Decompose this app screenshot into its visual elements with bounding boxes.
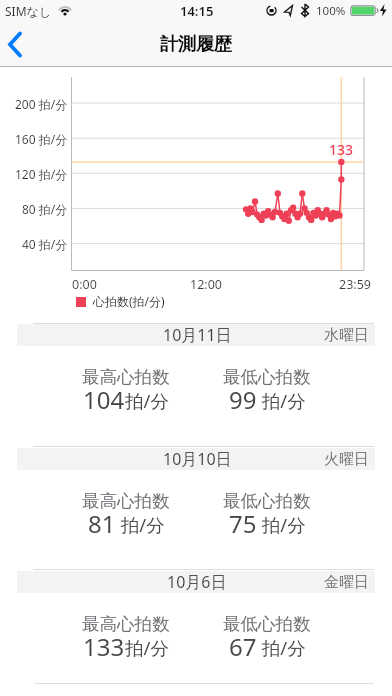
staticText: 拍/分 <box>257 388 306 413</box>
staticText: 最低心拍数 <box>223 490 311 512</box>
staticText: 最低心拍数 <box>223 613 311 635</box>
button[interactable]: 67 <box>197 630 337 664</box>
button[interactable]: 99 <box>197 383 337 417</box>
staticText: 最低心拍数 <box>223 366 311 388</box>
staticText: 23:59 <box>339 276 371 291</box>
staticText: 拍/分 <box>116 512 165 537</box>
staticText: 10月6日 <box>167 571 227 593</box>
staticText: 拍/分 <box>257 512 306 537</box>
staticText: SIMなし <box>5 3 52 19</box>
button[interactable]: 10月6日 <box>17 571 375 593</box>
staticText: 200 拍/分 <box>15 96 68 112</box>
staticText: 拍/分 <box>125 388 169 413</box>
staticText: 104 <box>83 383 125 416</box>
staticText: 最高心拍数 <box>82 366 170 388</box>
button[interactable]: 10月11日 <box>17 324 375 346</box>
button[interactable]: 81 <box>56 507 196 541</box>
staticText: 計測履歴 <box>160 33 232 55</box>
button[interactable] <box>0 24 44 66</box>
staticText: 120 拍/分 <box>15 166 68 182</box>
staticText: 0:00 <box>72 276 97 291</box>
staticText: 最高心拍数 <box>82 490 170 512</box>
staticText: 133 <box>329 140 354 156</box>
button[interactable]: 10月10日 <box>17 448 375 470</box>
staticText: 最高心拍数 <box>82 613 170 635</box>
staticText: 10月11日 <box>163 324 232 346</box>
staticText: 14:15 <box>180 2 214 19</box>
staticText: 10月10日 <box>163 448 232 470</box>
staticText: 拍/分 <box>125 635 169 660</box>
staticText: 99 <box>229 383 257 416</box>
staticText: 水曜日 <box>324 326 369 345</box>
staticText: 40 拍/分 <box>22 236 68 252</box>
button[interactable]: 75 <box>197 507 337 541</box>
staticText: 80 拍/分 <box>22 201 68 217</box>
staticText: 100% <box>316 3 346 19</box>
staticText: 75 <box>229 507 257 540</box>
staticText: 火曜日 <box>324 450 369 469</box>
staticText: 160 拍/分 <box>15 131 68 147</box>
staticText: 12:00 <box>190 276 222 291</box>
button[interactable]: 104 <box>56 383 196 417</box>
staticText: 81 <box>88 507 116 540</box>
staticText: 67 <box>229 630 257 663</box>
staticText: 金曜日 <box>324 573 369 592</box>
button[interactable]: 133 <box>56 630 196 664</box>
staticText: 133 <box>83 630 125 663</box>
staticText: 拍/分 <box>257 635 306 660</box>
staticText: 心拍数(拍/分) <box>93 293 165 309</box>
